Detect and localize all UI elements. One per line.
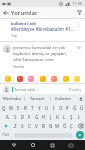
- button[interactable]: Beğen: [76, 45, 82, 51]
- staticText: M: [55, 123, 60, 129]
- staticText: ?123: [2, 133, 9, 137]
- staticText: #ilerideyse #birebakalim #1907: [11, 26, 76, 32]
- button[interactable]: M: [54, 122, 61, 130]
- button[interactable]: Geri: [0, 7, 11, 18]
- button[interactable]: R: [22, 104, 29, 112]
- button[interactable]: J: [47, 113, 54, 121]
- button[interactable]: H: [40, 113, 47, 121]
- staticText: F: [28, 114, 31, 120]
- button[interactable]: Gönder: [76, 131, 84, 139]
- button[interactable]: I: [75, 113, 82, 121]
- button[interactable]: L: [61, 113, 68, 121]
- staticText: G: [35, 114, 39, 120]
- button[interactable]: Tamam: [25, 94, 50, 103]
- button[interactable]: Paylaş: [69, 87, 82, 92]
- button[interactable]: yorumcu Sonsuzluk en çok kaybolur, dönüş…: [0, 42, 85, 69]
- button[interactable]: Ö: [61, 122, 68, 130]
- button[interactable]: smile: [4, 75, 12, 83]
- button[interactable]: clap: [73, 75, 81, 83]
- staticText: V: [35, 123, 38, 129]
- staticText: kullanici_adi: [11, 21, 36, 26]
- staticText: Ö: [63, 123, 67, 129]
- button[interactable]: F: [26, 113, 33, 121]
- button[interactable]: B: [40, 122, 47, 130]
- button[interactable]: Klavye: [66, 140, 76, 150]
- button[interactable]: O: [57, 104, 64, 112]
- button[interactable]: Ş: [68, 113, 75, 121]
- button[interactable]: Y: [36, 104, 43, 112]
- staticText: S: [14, 114, 17, 120]
- button[interactable]: C: [26, 122, 33, 130]
- staticText: B: [42, 123, 45, 129]
- button[interactable]: P: [64, 104, 71, 112]
- button[interactable]: S: [11, 113, 19, 121]
- button[interactable]: wow: [50, 75, 58, 83]
- button[interactable]: K: [54, 113, 61, 121]
- button[interactable]: Emoji: [10, 131, 14, 139]
- button[interactable]: Yanıtla: [13, 64, 24, 69]
- button[interactable]: X: [19, 122, 26, 130]
- button[interactable]: T: [29, 104, 36, 112]
- staticText: Tamam: [30, 96, 45, 102]
- button[interactable]: Filtrele: [74, 7, 85, 18]
- staticText: J: [50, 114, 52, 120]
- button[interactable]: Sesle yaz: [76, 94, 85, 103]
- staticText: ,: [11, 133, 13, 138]
- staticText: W: [9, 105, 14, 111]
- staticText: .: [73, 133, 75, 138]
- button[interactable]: Ğ: [71, 104, 78, 112]
- staticText: Ş: [70, 114, 73, 120]
- button[interactable]: D: [19, 113, 26, 121]
- staticText: 1sa: [11, 33, 17, 38]
- button[interactable]: .: [72, 131, 76, 139]
- staticText: L: [63, 114, 66, 120]
- button[interactable]: Ü: [78, 104, 85, 112]
- staticText: Y: [38, 105, 41, 111]
- staticText: I: [78, 114, 80, 120]
- staticText: ⋮: [76, 21, 81, 27]
- staticText: X: [21, 123, 24, 129]
- button[interactable]: Q: [0, 104, 8, 112]
- button[interactable]: A: [3, 113, 11, 121]
- staticText: D: [21, 114, 25, 120]
- button[interactable]: V: [33, 122, 40, 130]
- button[interactable]: sad: [62, 75, 70, 83]
- staticText: Yorumlar: [11, 9, 38, 17]
- button[interactable]: heart: [27, 75, 35, 83]
- staticText: I: [53, 105, 55, 111]
- button[interactable]: Ç: [68, 122, 75, 130]
- button[interactable]: Ana ekran: [28, 140, 38, 150]
- staticText: 11:05: [72, 1, 83, 6]
- staticText: Q: [2, 105, 6, 111]
- staticText: U: [45, 105, 49, 111]
- button[interactable]: fire: [16, 75, 24, 83]
- button[interactable]: Merhaba: [0, 94, 24, 103]
- staticText: O: [59, 105, 63, 111]
- button[interactable]: U: [43, 104, 50, 112]
- staticText: Merhaba: [3, 96, 21, 102]
- button[interactable]: W: [8, 104, 15, 112]
- button[interactable]: Geri: [9, 140, 19, 150]
- button[interactable]: I: [50, 104, 57, 112]
- button[interactable]: joy: [39, 75, 47, 83]
- button[interactable]: Kullanıcı: [51, 94, 76, 103]
- button[interactable]: G: [33, 113, 40, 121]
- staticText: C: [28, 123, 31, 129]
- button[interactable]: Z: [11, 122, 19, 130]
- button[interactable]: Sil: [75, 122, 85, 130]
- staticText: Ğ: [73, 105, 77, 111]
- button[interactable]: E: [15, 104, 22, 112]
- button[interactable]: Shift: [0, 122, 11, 130]
- staticText: E: [17, 105, 20, 111]
- button[interactable]: N: [47, 122, 54, 130]
- button[interactable]: Yorum ekle...: [14, 87, 69, 92]
- staticText: P: [66, 105, 69, 111]
- staticText: H: [42, 114, 46, 120]
- staticText: A: [6, 114, 9, 120]
- button[interactable]: Son kullanılanlar: [47, 140, 57, 150]
- staticText: N: [49, 123, 53, 129]
- staticText: R: [24, 105, 27, 111]
- staticText: yorumcu Sonsuzluk en çok kaybolur, dönüş…: [13, 45, 74, 63]
- button[interactable]: ?123: [1, 131, 10, 139]
